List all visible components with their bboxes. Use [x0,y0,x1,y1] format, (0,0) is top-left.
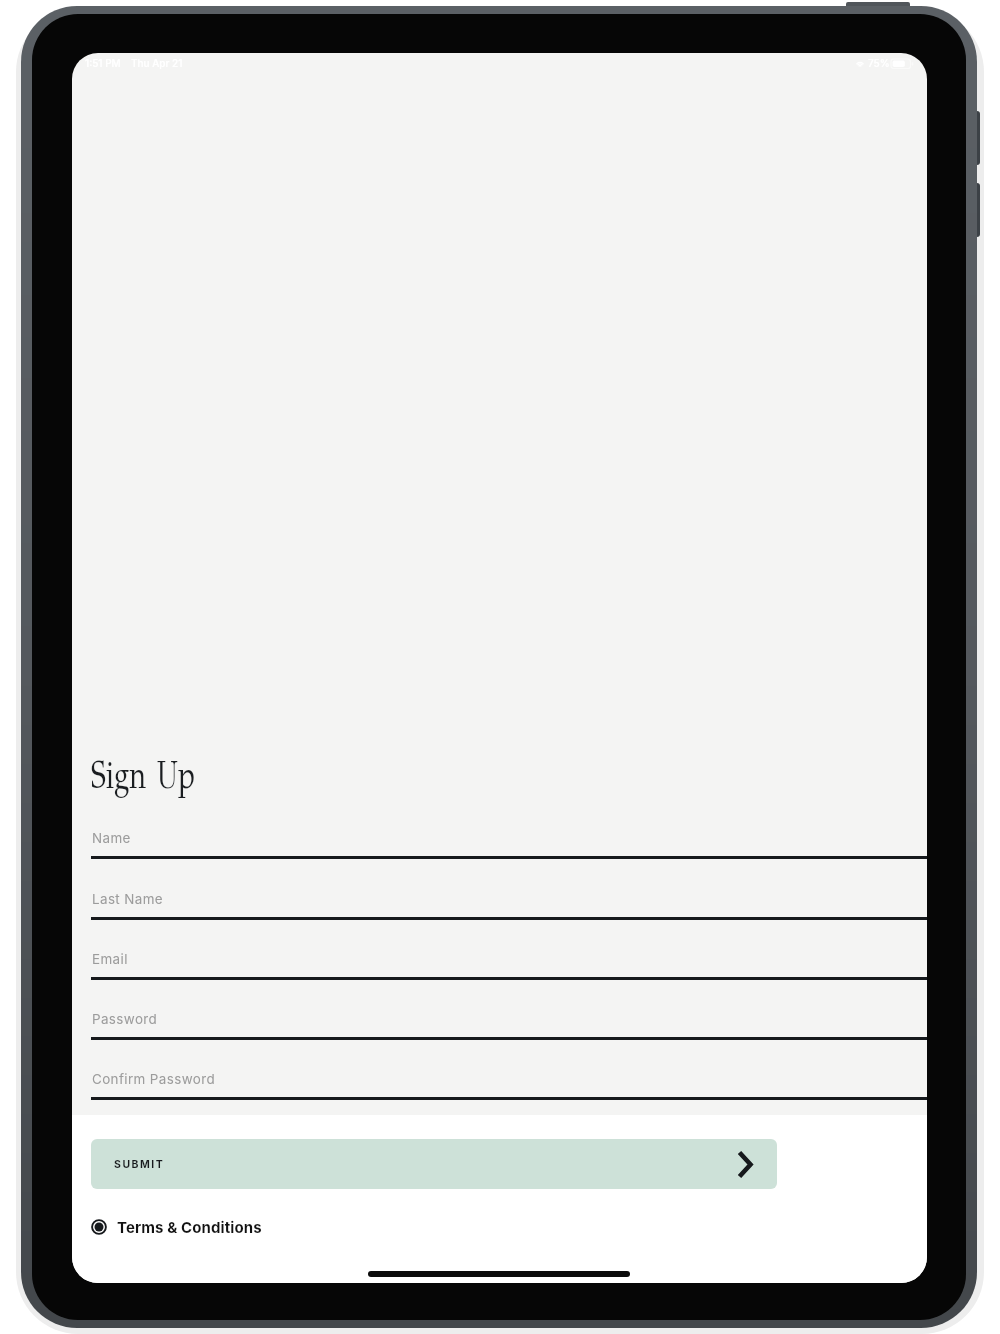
staticText: Email [92,951,128,967]
button[interactable]: Terms & Conditions [91,1216,262,1238]
staticText: SUBMIT [114,1158,165,1171]
staticText: Thu Apr 21 [131,57,183,69]
staticText: Terms & Conditions [117,1218,262,1236]
button[interactable]: SUBMIT [91,1139,777,1189]
staticText: 75% [868,57,890,69]
staticText: Last Name [92,891,164,907]
button[interactable]: Confirm Password [91,1067,927,1097]
staticText: Password [92,1011,158,1027]
staticText: 1:51 PM [85,57,121,69]
button[interactable]: Password [91,1007,927,1037]
button[interactable]: Name [91,826,927,856]
staticText: Confirm Password [92,1071,216,1087]
staticText: Name [92,830,131,846]
button[interactable]: Email [91,947,927,977]
staticText: Sign Up [91,751,195,799]
button[interactable]: Last Name [91,887,927,917]
